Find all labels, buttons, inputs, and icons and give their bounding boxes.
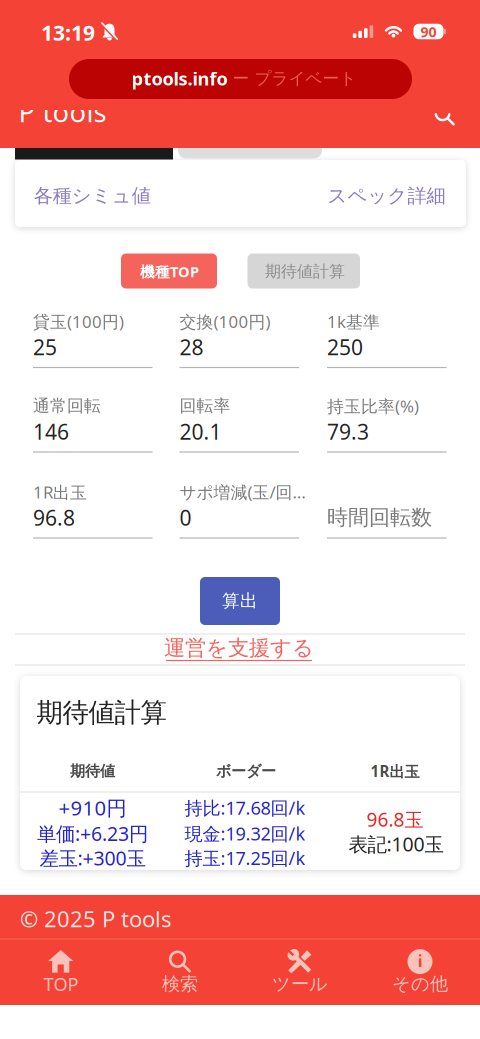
staticText: ツール <box>272 973 328 995</box>
staticText: 79.3 <box>327 417 369 446</box>
staticText: 時間回転数 <box>327 504 432 531</box>
staticText: 差玉:+300玉 <box>39 845 145 871</box>
staticText: 交換(100円) <box>179 310 270 333</box>
staticText: 運営を支援する <box>164 635 314 661</box>
staticText: TOP <box>43 972 78 996</box>
staticText: 96.8 <box>33 503 75 532</box>
staticText: +910円 <box>58 794 126 821</box>
staticText: ptools.info <box>131 66 227 91</box>
staticText: 250 <box>327 333 363 361</box>
staticText: © 2025 P tools <box>20 904 172 934</box>
staticText: ー プライベート <box>232 68 356 89</box>
button[interactable]: 期待値計算 <box>0 0 480 1039</box>
button[interactable]: その他 <box>0 0 480 1039</box>
staticText: 13:19 <box>41 18 95 47</box>
staticText: 28 <box>179 333 203 361</box>
staticText: 各種シミュ値 <box>34 184 151 208</box>
staticText: 持玉比率(%) <box>327 395 419 417</box>
button[interactable]: 検索 <box>0 0 480 1039</box>
staticText: 90 <box>420 22 436 41</box>
button[interactable]: 算出 <box>0 0 480 1039</box>
staticText: ボーダー <box>216 762 276 781</box>
staticText: 機種TOP <box>140 261 199 281</box>
button[interactable]: TOP <box>0 0 480 1039</box>
staticText: 現金:19.32回/k <box>184 821 305 846</box>
button[interactable]: ツール <box>0 0 480 1039</box>
staticText: 0 <box>179 503 191 532</box>
staticText: 期待値計算 <box>265 261 345 282</box>
button[interactable]: 各種シミュ値 <box>0 0 480 1039</box>
staticText: 検索 <box>162 973 198 995</box>
staticText: P tools <box>18 93 106 130</box>
staticText: 表記:100玉 <box>348 831 443 857</box>
staticText: 1R出玉 <box>370 761 419 782</box>
staticText: 96.8玉 <box>366 806 423 832</box>
button[interactable]: 運営を支援する <box>0 0 480 1039</box>
staticText: 貸玉(100円) <box>33 310 124 333</box>
staticText: 期待値計算 <box>36 696 166 729</box>
button[interactable]: 機種TOP <box>0 0 480 1039</box>
staticText: 回転率 <box>179 395 230 417</box>
staticText: 20.1 <box>179 417 221 446</box>
staticText: 146 <box>33 417 69 446</box>
staticText: 1k基準 <box>327 310 380 333</box>
staticText: 通常回転 <box>33 395 101 417</box>
staticText: 1R出玉 <box>33 480 87 503</box>
staticText: 期待値 <box>70 762 115 781</box>
staticText: 持玉:17.25回/k <box>184 846 305 870</box>
staticText: 単価:+6.23円 <box>37 820 148 847</box>
button[interactable]: スペック詳細 <box>0 0 480 1039</box>
staticText: 持比:17.68回/k <box>184 795 305 820</box>
staticText: 算出 <box>222 590 258 612</box>
staticText: スペック詳細 <box>327 184 445 208</box>
staticText: 25 <box>33 333 57 361</box>
staticText: サポ増減(玉/回… <box>179 481 305 503</box>
staticText: その他 <box>392 973 448 995</box>
